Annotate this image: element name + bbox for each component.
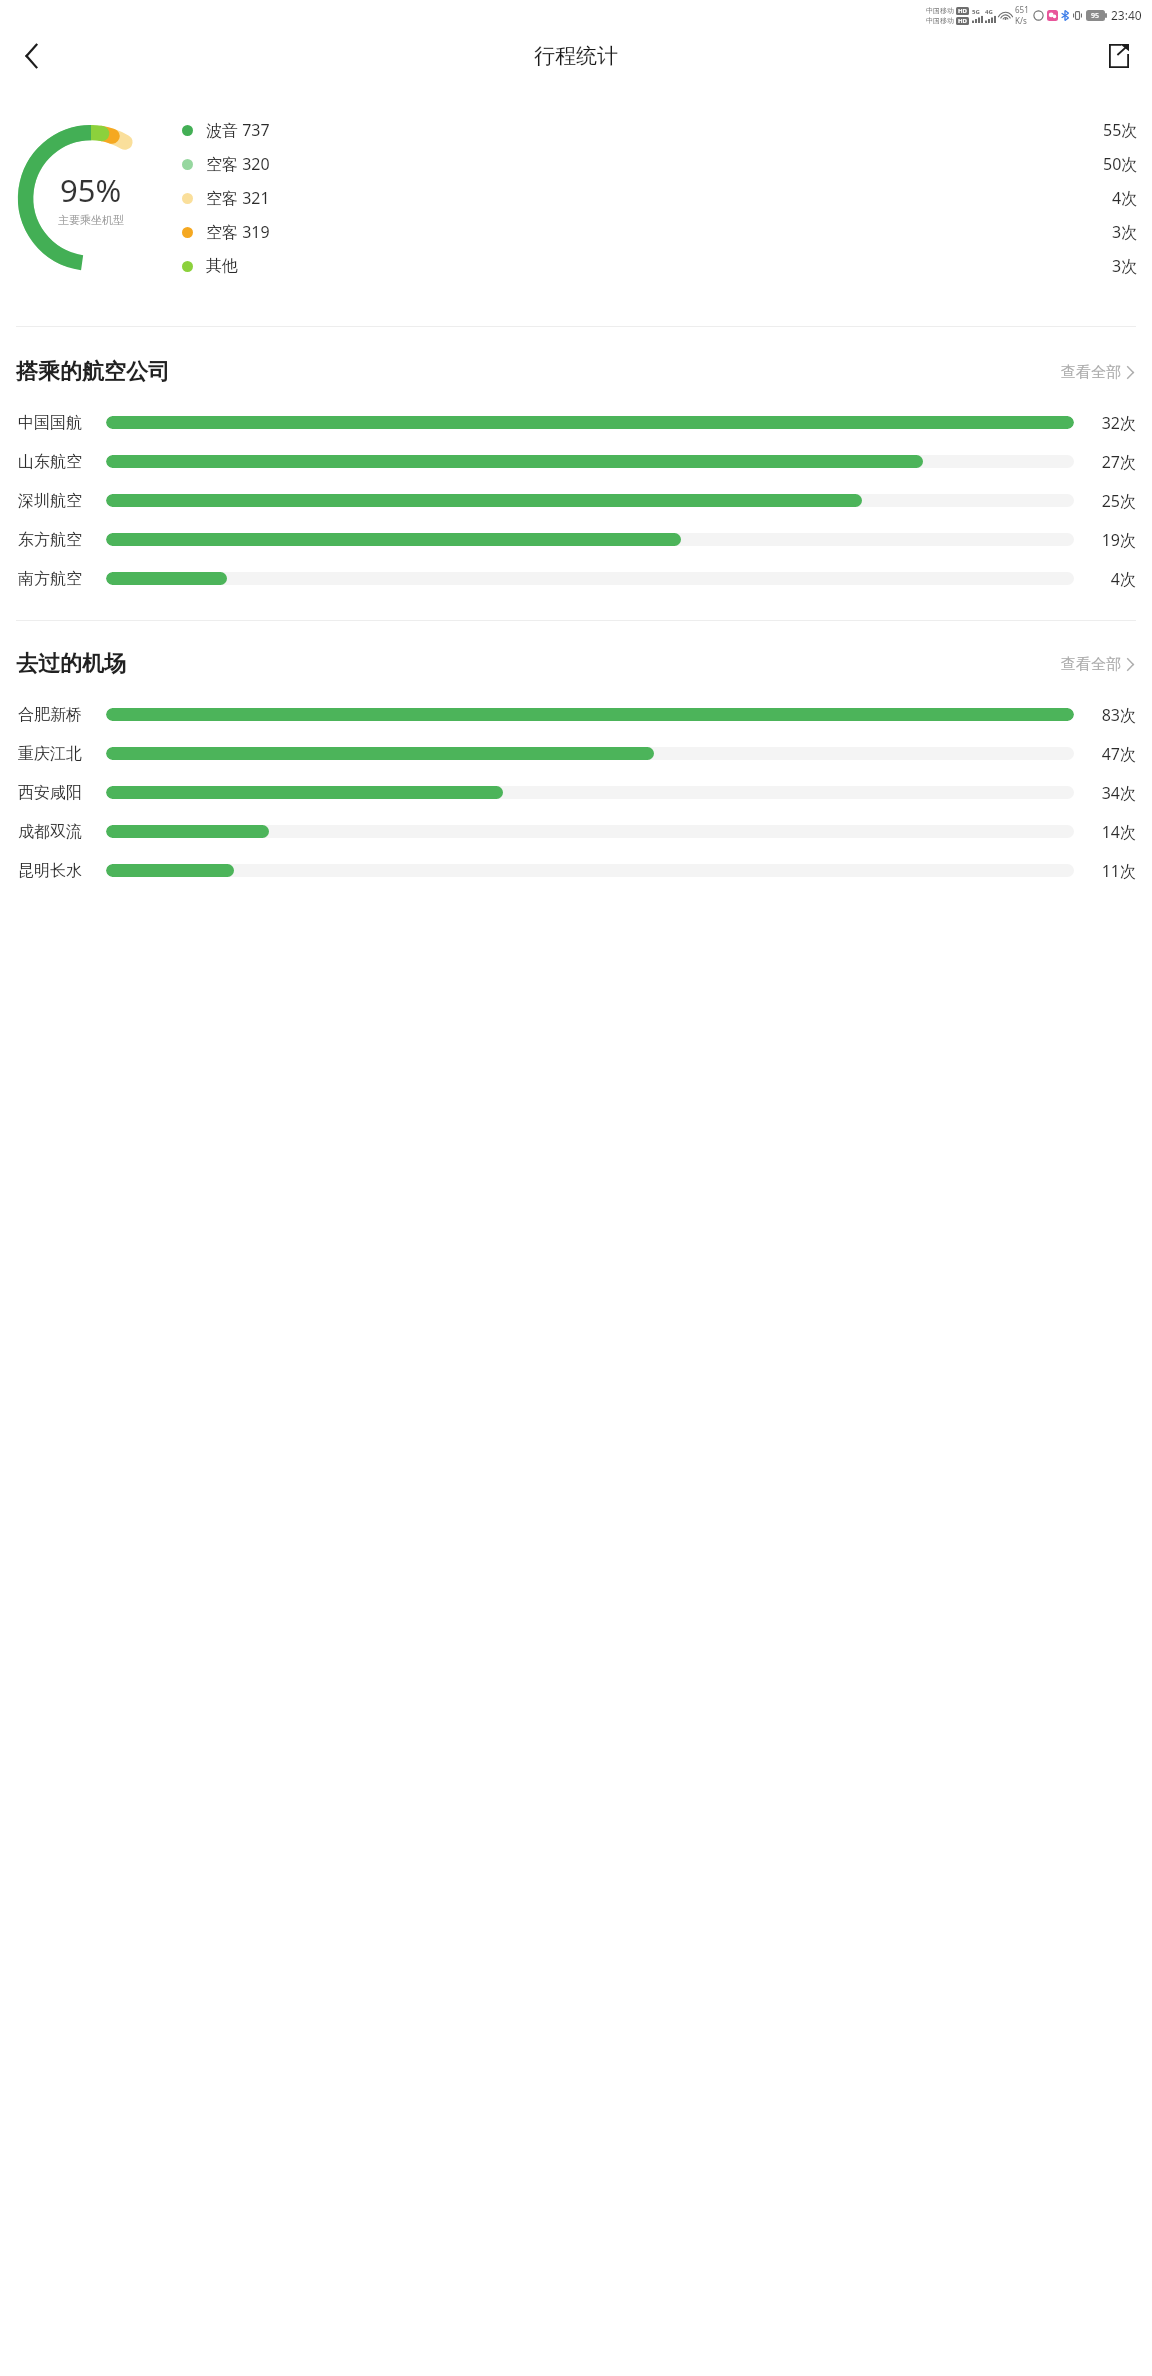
staticText: 3次 bbox=[1112, 255, 1138, 277]
button[interactable]: 深圳航空 bbox=[0, 481, 1152, 520]
staticText: 深圳航空 bbox=[18, 491, 82, 511]
button[interactable]: 查看全部 bbox=[1053, 359, 1136, 386]
button[interactable]: Share bbox=[1096, 33, 1142, 79]
staticText: 50次 bbox=[1103, 153, 1138, 175]
button[interactable]: 合肥新桥 bbox=[0, 695, 1152, 734]
staticText: 主要乘坐机型 bbox=[58, 213, 124, 227]
button[interactable]: 查看全部 bbox=[1053, 651, 1136, 678]
staticText: 95% bbox=[60, 169, 122, 211]
staticText: 查看全部 bbox=[1061, 363, 1121, 382]
staticText: 山东航空 bbox=[18, 452, 82, 472]
staticText: 中国移动 bbox=[926, 16, 954, 25]
staticText: 重庆江北 bbox=[18, 744, 82, 764]
button[interactable]: 重庆江北 bbox=[0, 734, 1152, 773]
button[interactable]: 东方航空 bbox=[0, 520, 1152, 559]
staticText: 中国国航 bbox=[18, 413, 82, 433]
staticText: 行程统计 bbox=[534, 43, 618, 69]
staticText: 3次 bbox=[1112, 221, 1138, 243]
staticText: 95 bbox=[1091, 11, 1100, 21]
staticText: 25次 bbox=[1074, 490, 1136, 512]
staticText: 昆明长水 bbox=[18, 861, 82, 881]
staticText: 23:40 bbox=[1111, 7, 1142, 23]
staticText: 5G bbox=[972, 8, 980, 16]
staticText: 南方航空 bbox=[18, 569, 82, 589]
staticText: 14次 bbox=[1074, 821, 1136, 843]
button[interactable]: 西安咸阳 bbox=[0, 773, 1152, 812]
staticText: 空客 321 bbox=[206, 187, 270, 209]
staticText: 83次 bbox=[1074, 704, 1136, 726]
button[interactable]: 昆明长水 bbox=[0, 851, 1152, 890]
staticText: 4G bbox=[985, 8, 993, 16]
staticText: HD bbox=[958, 7, 967, 15]
button[interactable]: 中国国航 bbox=[0, 403, 1152, 442]
staticText: 合肥新桥 bbox=[18, 705, 82, 725]
staticText: 空客 319 bbox=[206, 221, 270, 243]
staticText: 波音 737 bbox=[206, 119, 270, 141]
staticText: 27次 bbox=[1074, 451, 1136, 473]
staticText: 其他 bbox=[206, 256, 238, 276]
staticText: 空客 320 bbox=[206, 153, 270, 175]
staticText: 去过的机场 bbox=[16, 650, 126, 678]
staticText: 55次 bbox=[1103, 119, 1138, 141]
staticText: 成都双流 bbox=[18, 822, 82, 842]
staticText: 32次 bbox=[1074, 412, 1136, 434]
staticText: 34次 bbox=[1074, 782, 1136, 804]
staticText: 4次 bbox=[1074, 568, 1136, 590]
staticText: 47次 bbox=[1074, 743, 1136, 765]
button[interactable]: Back bbox=[8, 33, 54, 79]
staticText: 查看全部 bbox=[1061, 655, 1121, 674]
button[interactable]: 成都双流 bbox=[0, 812, 1152, 851]
staticText: K/s bbox=[1015, 15, 1027, 26]
staticText: 西安咸阳 bbox=[18, 783, 82, 803]
button[interactable]: 山东航空 bbox=[0, 442, 1152, 481]
staticText: 搭乘的航空公司 bbox=[16, 358, 170, 386]
staticText: 651 bbox=[1015, 4, 1029, 15]
staticText: 东方航空 bbox=[18, 530, 82, 550]
staticText: 11次 bbox=[1074, 860, 1136, 882]
staticText: 4次 bbox=[1112, 187, 1138, 209]
staticText: HD bbox=[958, 17, 967, 25]
staticText: 中国移动 bbox=[926, 6, 954, 15]
staticText: 19次 bbox=[1074, 529, 1136, 551]
button[interactable]: 南方航空 bbox=[0, 559, 1152, 598]
